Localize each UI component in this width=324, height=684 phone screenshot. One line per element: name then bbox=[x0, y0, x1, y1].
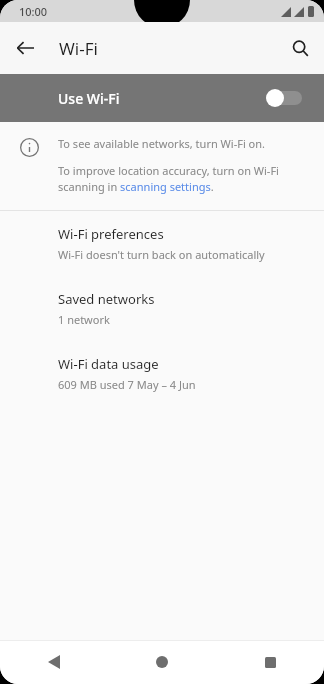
staticText: Use Wi-Fi bbox=[58, 89, 120, 108]
button[interactable]: Back bbox=[10, 33, 40, 63]
staticText: Saved networks bbox=[58, 290, 155, 308]
staticText: Wi-Fi data usage bbox=[58, 355, 159, 373]
staticText: Wi-Fi doesn't turn back on automatically bbox=[58, 247, 265, 262]
staticText: Wi-Fi bbox=[59, 37, 98, 60]
staticText: To see available networks, turn Wi-Fi on… bbox=[58, 136, 265, 151]
staticText: 609 MB used 7 May – 4 Jun bbox=[58, 377, 196, 392]
button[interactable]: Search bbox=[284, 32, 316, 64]
button[interactable]: Home bbox=[108, 640, 216, 684]
staticText: To improve location accuracy, turn on Wi… bbox=[58, 163, 304, 194]
button[interactable]: Use Wi-Fi bbox=[0, 74, 324, 122]
button[interactable]: Wi-Fi data usage bbox=[0, 341, 324, 406]
staticText: 10:00 bbox=[19, 4, 48, 19]
staticText: 1 network bbox=[58, 312, 110, 327]
button[interactable]: Recents bbox=[216, 640, 324, 684]
button[interactable]: Wi-Fi preferences bbox=[0, 211, 324, 276]
staticText: Wi-Fi preferences bbox=[58, 225, 164, 243]
button[interactable]: Back bbox=[0, 640, 108, 684]
button[interactable]: Saved networks bbox=[0, 276, 324, 341]
